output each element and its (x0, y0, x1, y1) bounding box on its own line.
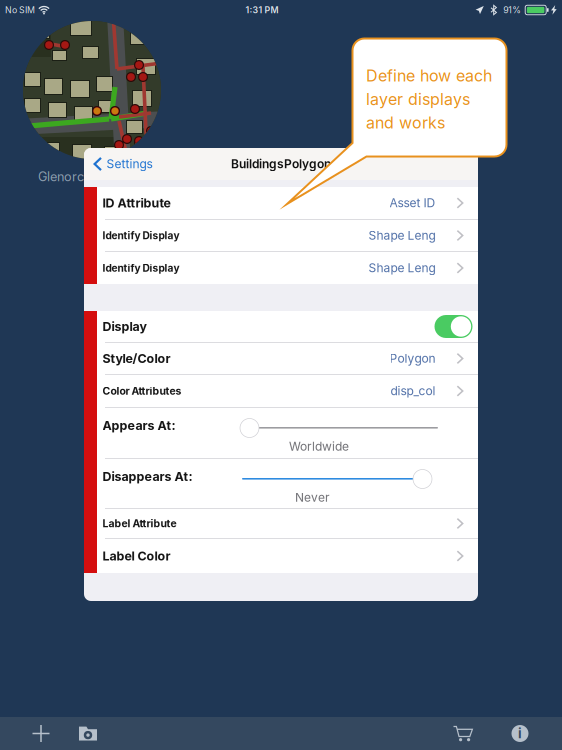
staticText: Color Attributes (102, 385, 181, 397)
button[interactable]: Display on (434, 315, 472, 338)
staticText: i (518, 725, 522, 741)
button[interactable]: Identify Display (97, 252, 478, 284)
staticText: Worldwide (289, 439, 349, 453)
staticText: 91% (503, 5, 521, 15)
staticText: Label Color (102, 548, 170, 563)
button[interactable]: Add layer (21, 717, 61, 750)
staticText: Style/Color (102, 351, 170, 366)
button[interactable]: Settings (84, 148, 162, 180)
button[interactable]: Label Attribute (97, 509, 478, 538)
staticText: BuildingsPolygon (231, 157, 331, 171)
staticText: Glenorchy (38, 169, 98, 184)
staticText: Display (102, 319, 146, 334)
staticText: Appears At: (102, 418, 175, 433)
staticText: Label Attribute (102, 517, 176, 530)
staticText: Never (295, 490, 330, 504)
staticText: Polygon (389, 351, 435, 366)
button[interactable]: Color Attributes (97, 375, 478, 407)
staticText: Define how each (366, 66, 492, 85)
staticText: Disappears At: (102, 469, 192, 484)
button[interactable]: Manage layers (68, 717, 108, 750)
staticText: No SIM (5, 5, 35, 15)
staticText: Identify Display (102, 262, 179, 274)
button[interactable]: Identify Display (97, 220, 478, 251)
button[interactable]: ID Attribute (97, 187, 478, 219)
button[interactable]: Store (443, 717, 483, 750)
button[interactable]: Label Color (97, 539, 478, 573)
staticText: and works (366, 113, 445, 132)
staticText: disp_col (390, 384, 435, 398)
staticText: ID Attribute (102, 195, 170, 210)
staticText: Shape Leng (368, 228, 435, 243)
staticText: Shape Leng (368, 261, 435, 275)
staticText: Asset ID (389, 196, 435, 210)
staticText: 1:31 PM (246, 5, 279, 15)
staticText: Settings (107, 157, 153, 171)
staticText: layer displays (366, 90, 470, 109)
staticText: Identify Display (102, 229, 179, 242)
button[interactable]: Information (500, 717, 540, 750)
button[interactable]: Style/Color (97, 343, 478, 374)
